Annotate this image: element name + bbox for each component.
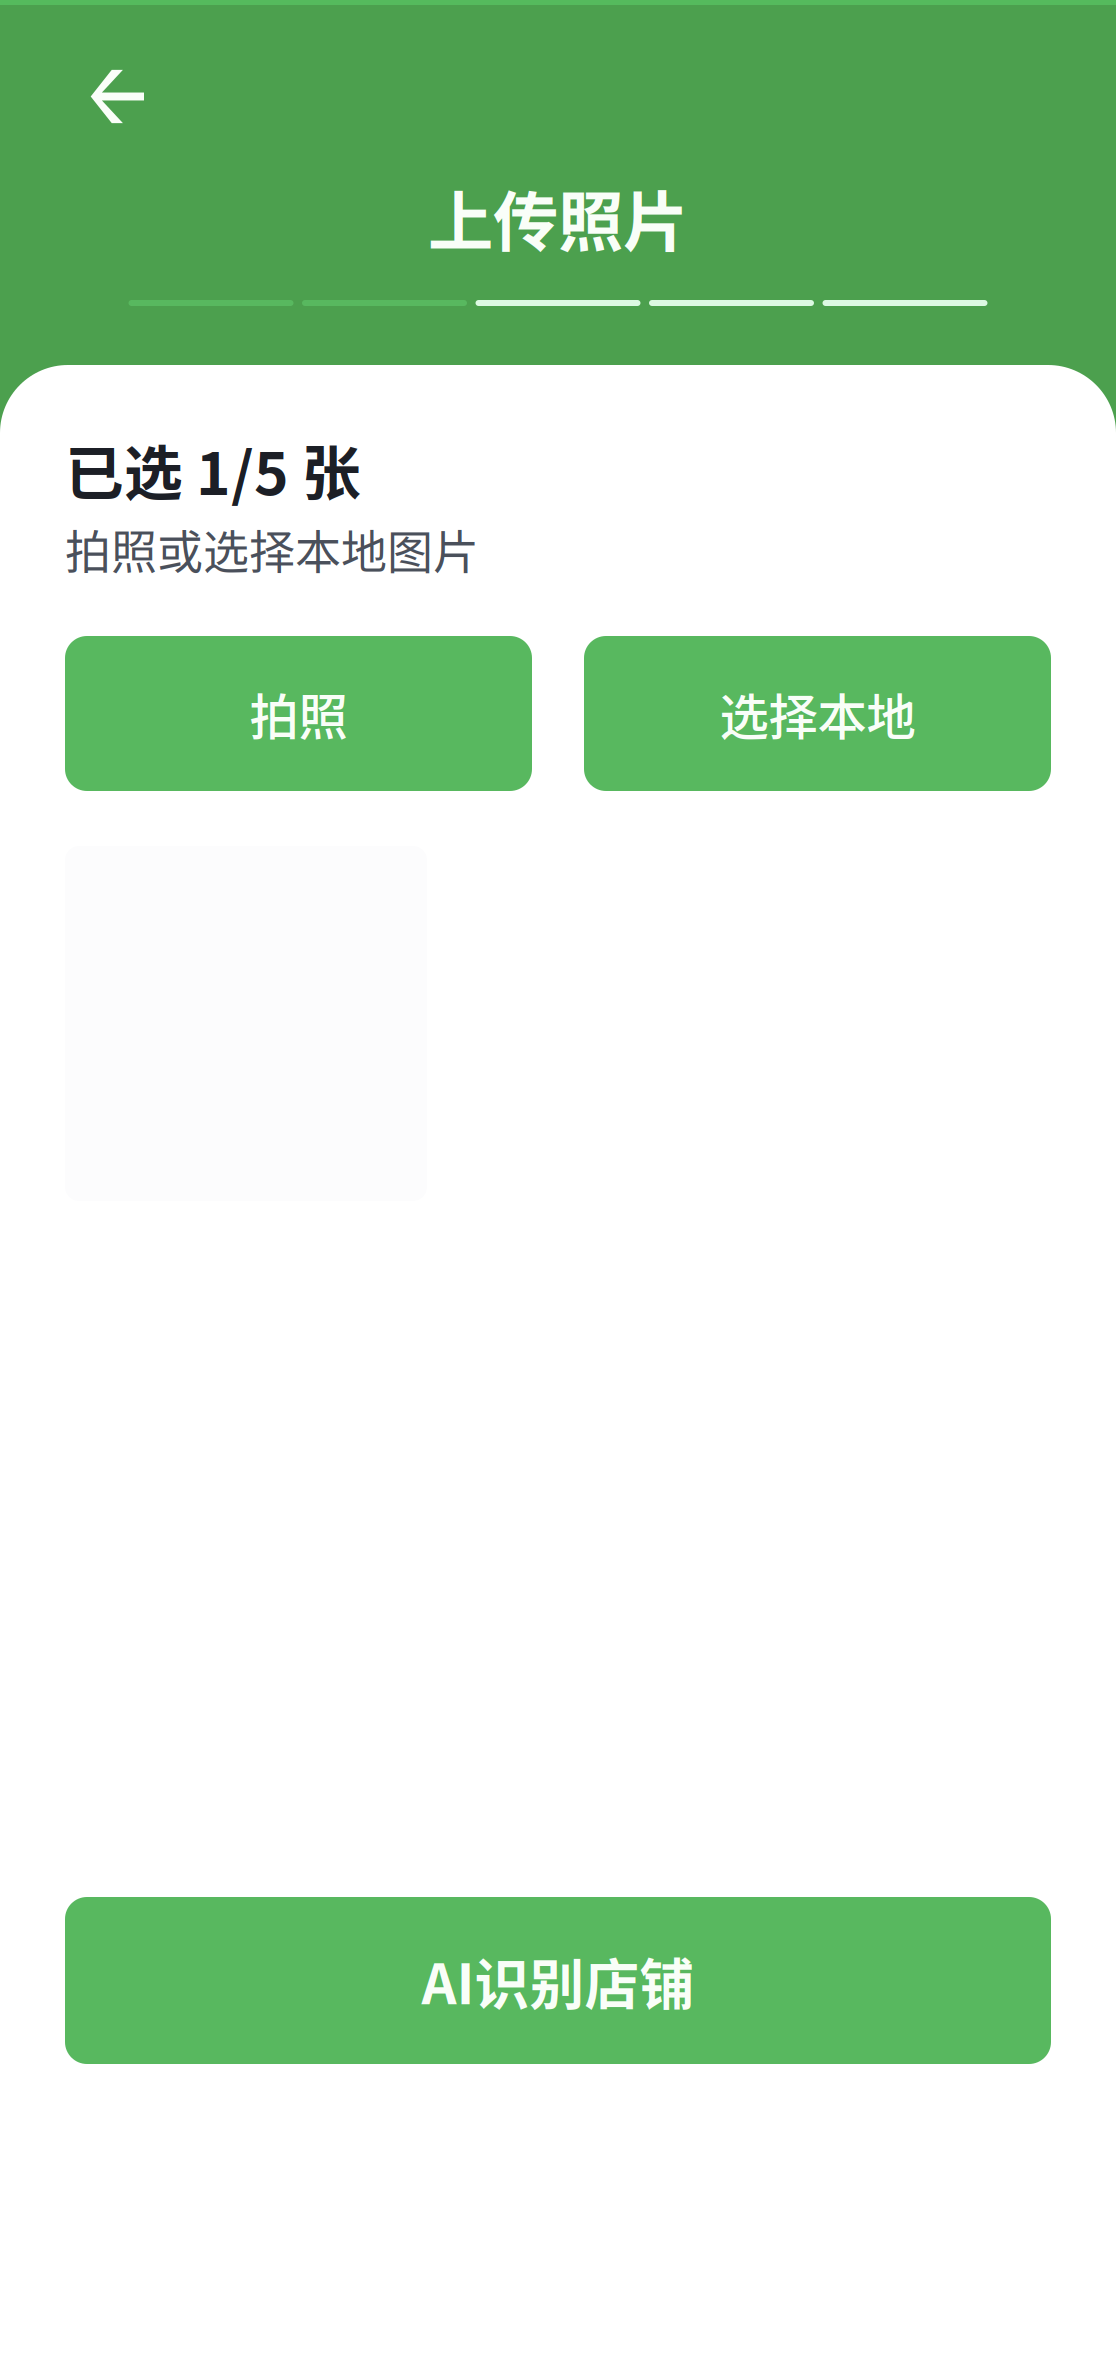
button[interactable]: 拍照 (65, 636, 532, 791)
staticText: AI识别店铺 (421, 1941, 694, 2020)
button[interactable]: Back (90, 70, 144, 123)
staticText: 选择本地 (719, 678, 915, 749)
staticText: 拍照或选择本地图片 (65, 515, 479, 582)
staticText: 已选 1/5 张 (65, 427, 361, 512)
staticText: 拍照 (249, 678, 347, 749)
staticText: 上传照片 (428, 170, 688, 264)
button[interactable]: AI识别店铺 (65, 1897, 1051, 2064)
button[interactable]: 选择本地 (584, 636, 1051, 791)
